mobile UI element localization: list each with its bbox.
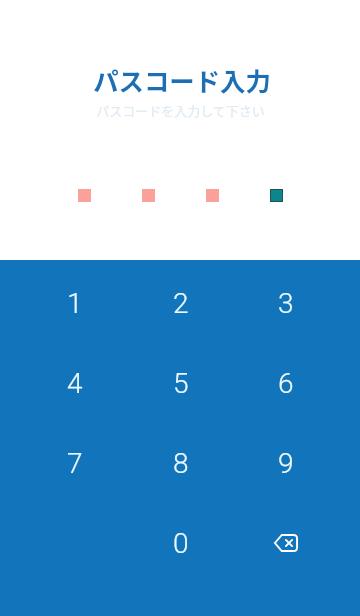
staticText: 4	[67, 367, 83, 400]
button[interactable]: 1	[22, 263, 128, 343]
button[interactable]: 6	[233, 343, 338, 423]
staticText: パスコードを入力して下さい	[96, 101, 265, 120]
button[interactable]: 5	[128, 343, 233, 423]
button[interactable]: 4	[22, 343, 128, 423]
staticText: 1	[67, 287, 83, 320]
staticText: 7	[67, 447, 83, 480]
button[interactable]: 0	[128, 503, 233, 583]
staticText: 0	[173, 527, 189, 560]
staticText: 9	[278, 447, 294, 480]
staticText: 6	[278, 367, 294, 400]
button[interactable]: 9	[233, 423, 338, 503]
staticText: 3	[278, 287, 294, 320]
button[interactable]: 2	[128, 263, 233, 343]
staticText: 5	[173, 367, 189, 400]
button[interactable]: 3	[233, 263, 338, 343]
button[interactable]: 7	[22, 423, 128, 503]
staticText: 2	[173, 287, 189, 320]
staticText: 8	[173, 447, 189, 480]
button[interactable]: Delete	[233, 503, 338, 583]
button[interactable]: 8	[128, 423, 233, 503]
staticText: パスコード入力	[93, 62, 271, 99]
